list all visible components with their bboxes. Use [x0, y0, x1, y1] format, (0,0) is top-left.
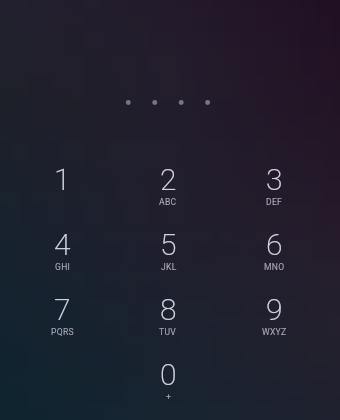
staticText: JKL [161, 262, 177, 272]
staticText: DEF [266, 197, 283, 207]
button[interactable]: 6 [221, 227, 327, 292]
other: PIN entry, 4 digits entered [0, 94, 340, 110]
staticText: 2 [160, 162, 177, 197]
button[interactable]: 4 [9, 227, 115, 292]
staticText: 3 [266, 162, 283, 197]
staticText: TUV [159, 327, 177, 337]
staticText: + [166, 392, 172, 402]
staticText: MNO [264, 262, 285, 272]
staticText: 6 [266, 227, 283, 262]
button[interactable]: 1 [9, 162, 115, 227]
staticText: 5 [160, 227, 177, 262]
staticText: PQRS [51, 327, 74, 337]
button[interactable]: 3 [221, 162, 327, 227]
staticText: 1 [54, 162, 71, 197]
staticText: GHI [55, 262, 71, 272]
staticText: 7 [54, 292, 71, 327]
staticText: ABC [159, 197, 177, 207]
button[interactable]: 9 [221, 292, 327, 357]
button[interactable]: 2 [115, 162, 221, 227]
staticText: 9 [266, 292, 283, 327]
staticText: 4 [54, 227, 71, 262]
button[interactable]: 5 [115, 227, 221, 292]
button[interactable]: 8 [115, 292, 221, 357]
staticText: 0 [160, 357, 177, 392]
staticText: WXYZ [262, 327, 287, 337]
staticText: 8 [160, 292, 177, 327]
button[interactable]: 7 [9, 292, 115, 357]
button[interactable]: 0 [115, 357, 221, 420]
